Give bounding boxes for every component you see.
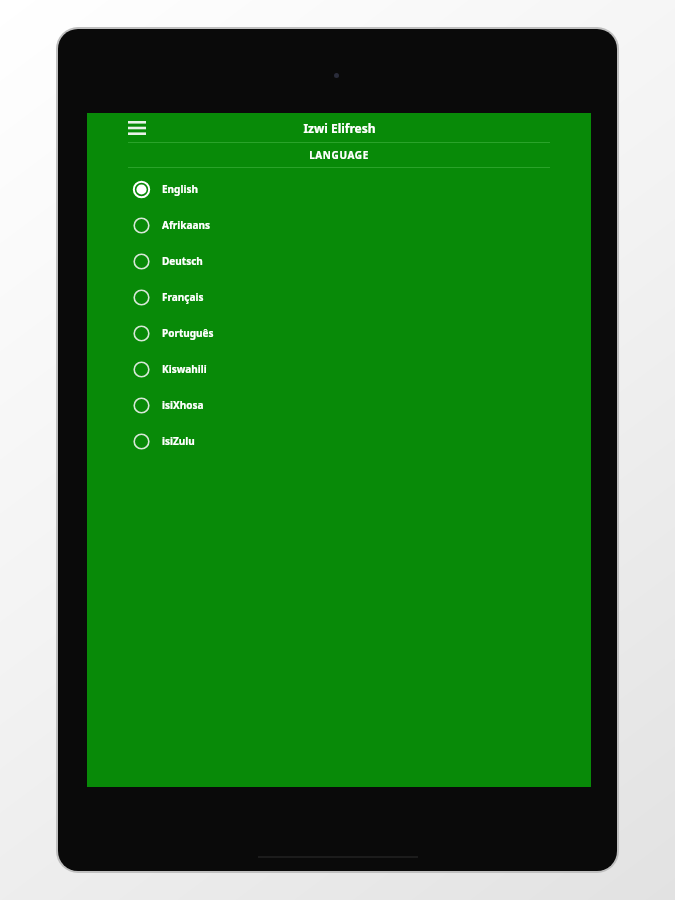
button[interactable]: Deutsch [87,243,591,279]
button[interactable]: Open navigation menu [124,116,150,140]
staticText: Izwi Elifresh [303,120,376,136]
staticText: Français [162,290,204,304]
staticText: Deutsch [162,254,203,268]
staticText: isiXhosa [162,398,204,412]
staticText: LANGUAGE [309,148,369,162]
button[interactable]: Kiswahili [87,351,591,387]
button[interactable]: Français [87,279,591,315]
button[interactable]: isiZulu [87,423,591,459]
button[interactable]: English [87,171,591,207]
staticText: isiZulu [162,434,195,448]
staticText: Kiswahili [162,362,207,376]
button[interactable]: Afrikaans [87,207,591,243]
staticText: Afrikaans [162,218,210,232]
button[interactable]: isiXhosa [87,387,591,423]
staticText: Português [162,326,214,340]
staticText: English [162,182,198,196]
button[interactable]: Português [87,315,591,351]
